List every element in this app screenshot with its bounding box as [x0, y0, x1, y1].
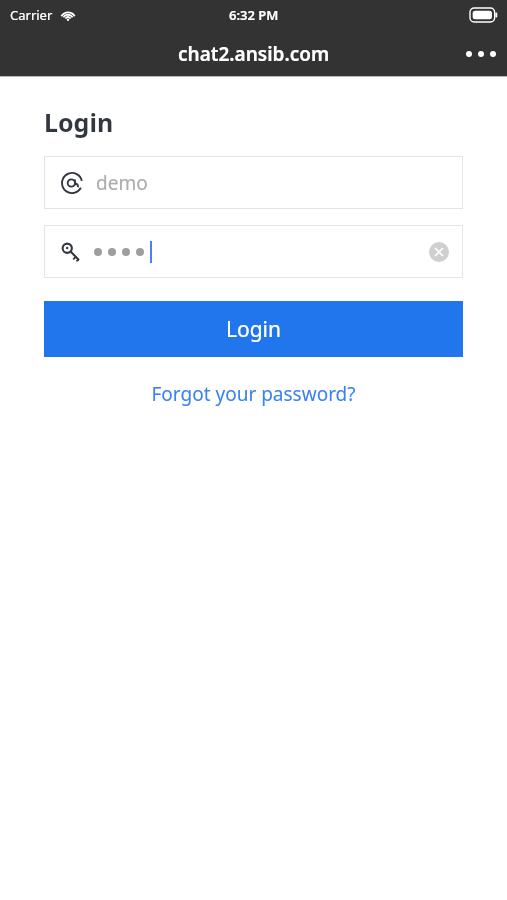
staticText: Login: [44, 105, 114, 139]
button[interactable]: More options: [455, 30, 507, 77]
staticText: 6:32 PM: [229, 6, 279, 24]
button[interactable]: demo: [44, 156, 463, 209]
staticText: Login: [226, 315, 282, 344]
staticText: Forgot your password?: [151, 381, 356, 407]
button[interactable]: Clear password: [419, 232, 459, 272]
button[interactable]: Login: [44, 301, 463, 357]
staticText: Carrier: [10, 6, 53, 24]
button[interactable]: Clear password: [44, 225, 463, 278]
staticText: chat2.ansib.com: [178, 41, 330, 67]
button[interactable]: Forgot your password?: [141, 377, 366, 411]
staticText: demo: [96, 170, 148, 196]
